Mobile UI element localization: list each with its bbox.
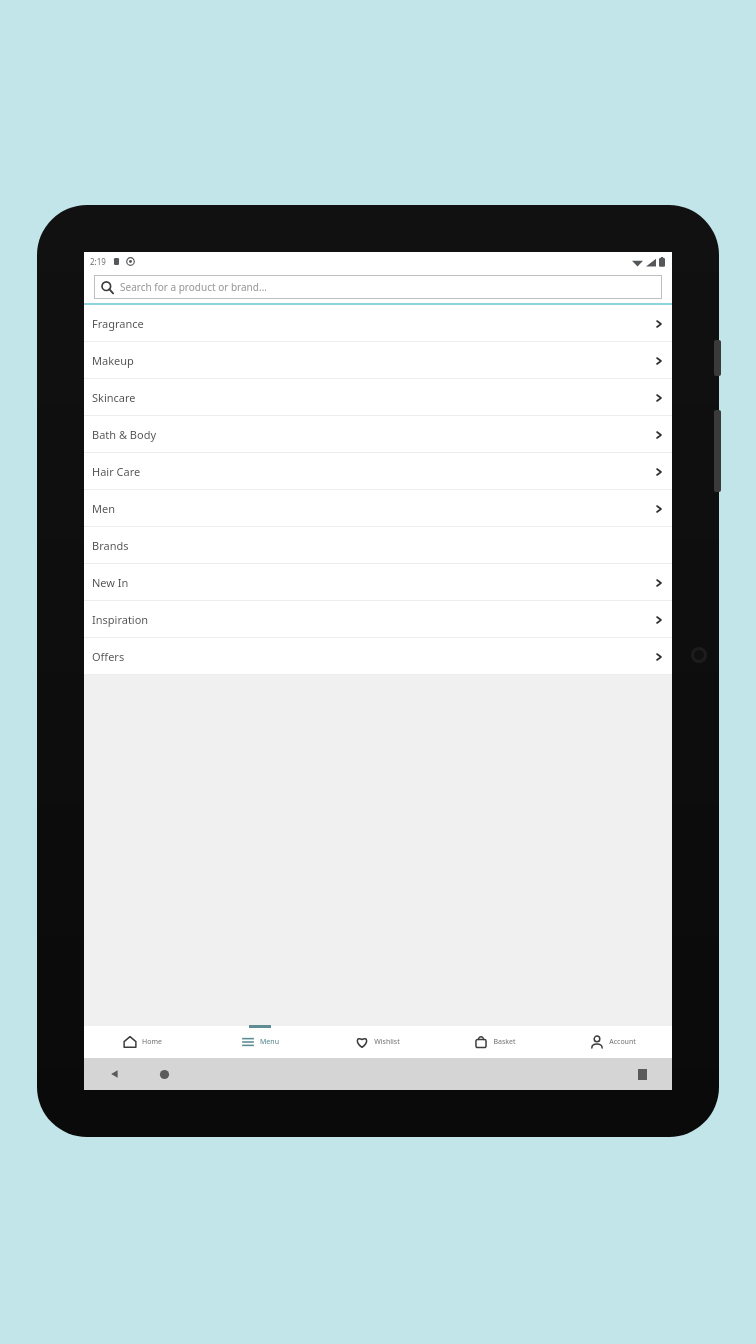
staticText: Wishlist (374, 1037, 400, 1047)
other: Account (590, 1035, 604, 1049)
button[interactable]: Account (554, 1026, 672, 1058)
staticText: New In (92, 575, 129, 590)
staticText: Menu (260, 1037, 279, 1047)
other: Basket (474, 1035, 488, 1049)
other: Wishlist (355, 1035, 369, 1049)
button[interactable]: Search for a product or brand... (94, 275, 662, 299)
button[interactable]: Skincare (84, 379, 672, 416)
other: Menu (241, 1035, 255, 1049)
button[interactable]: Fragrance (84, 305, 672, 342)
staticText: Inspiration (92, 612, 149, 627)
button[interactable]: Inspiration (84, 601, 672, 638)
staticText: Search for a product or brand... (120, 280, 267, 294)
staticText: Home (142, 1037, 162, 1047)
button[interactable]: Bath & Body (84, 416, 672, 453)
button[interactable]: Men (84, 490, 672, 527)
button[interactable]: Back (109, 1068, 121, 1080)
button[interactable]: Hair Care (84, 453, 672, 490)
button[interactable]: Wishlist (318, 1026, 436, 1058)
staticText: 2:19 (90, 256, 106, 267)
button[interactable]: Menu (201, 1026, 318, 1058)
staticText: Offers (92, 649, 125, 664)
staticText: Fragrance (92, 316, 144, 331)
staticText: Bath & Body (92, 427, 157, 442)
staticText: Skincare (92, 390, 136, 405)
button[interactable]: Home (84, 1026, 201, 1058)
button[interactable]: Home (159, 1069, 170, 1080)
staticText: Hair Care (92, 464, 141, 479)
button[interactable]: Basket (436, 1026, 554, 1058)
staticText: Brands (92, 538, 129, 553)
staticText: Account (609, 1037, 636, 1047)
button[interactable]: Brands (84, 527, 672, 564)
staticText: Makeup (92, 353, 134, 368)
button[interactable]: Makeup (84, 342, 672, 379)
button[interactable]: New In (84, 564, 672, 601)
other: Home (123, 1035, 137, 1049)
staticText: Men (92, 501, 115, 516)
button[interactable]: Offers (84, 638, 672, 675)
staticText: Basket (493, 1037, 516, 1047)
